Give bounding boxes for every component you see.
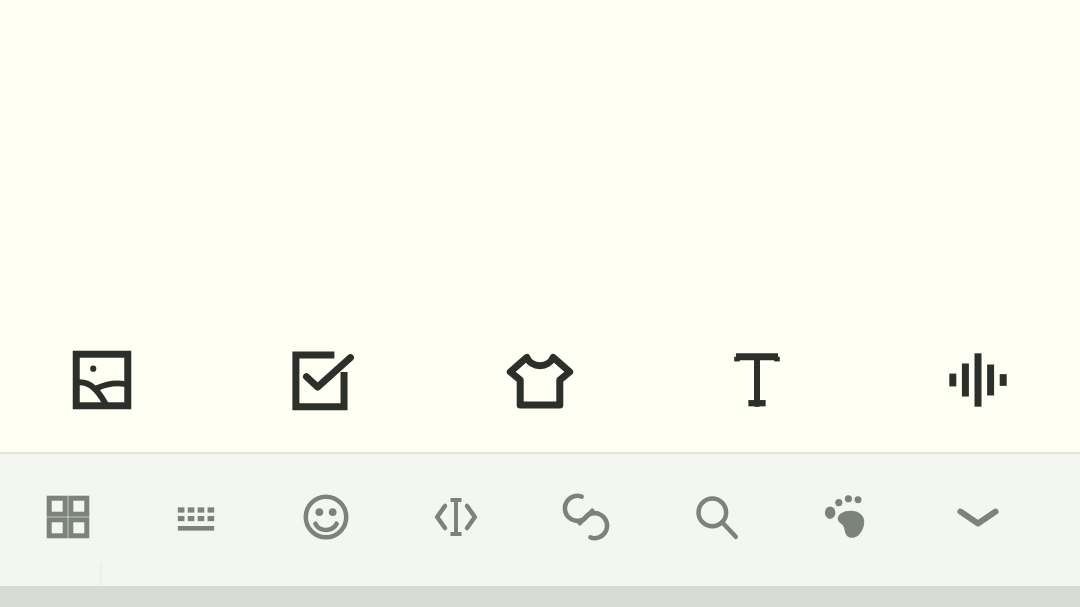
button[interactable]: Image xyxy=(57,335,147,425)
button[interactable]: Checklist xyxy=(277,335,367,425)
button[interactable]: Voice xyxy=(933,335,1023,425)
button[interactable]: Apps xyxy=(34,479,102,555)
button[interactable]: Attach link xyxy=(552,479,620,555)
button[interactable]: Collapse xyxy=(944,479,1012,555)
button[interactable]: Emoji xyxy=(292,479,360,555)
button[interactable]: Footprint xyxy=(812,479,880,555)
button[interactable]: Text xyxy=(712,335,802,425)
button[interactable]: Text cursor xyxy=(422,479,490,555)
button[interactable]: Sticker xyxy=(495,335,585,425)
button[interactable]: Search xyxy=(682,479,750,555)
button[interactable]: Keyboard xyxy=(162,479,230,555)
